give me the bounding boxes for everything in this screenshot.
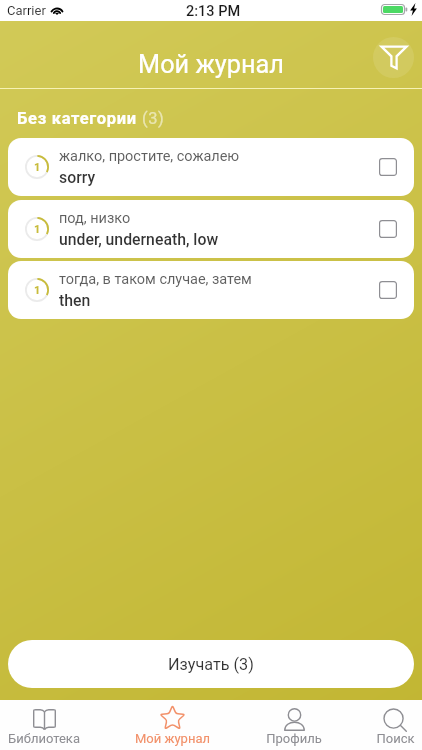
staticText: Профиль (266, 731, 322, 746)
staticText: Без категории (17, 109, 137, 128)
button[interactable]: Изучать (3) (8, 640, 414, 688)
button[interactable]: 1 (8, 138, 414, 196)
button[interactable]: 1 (8, 261, 414, 319)
staticText: (3) (142, 109, 165, 128)
button[interactable]: Select word (379, 220, 397, 238)
staticText: Мой журнал (0, 50, 422, 80)
button[interactable]: 1 (8, 200, 414, 258)
button[interactable]: Select word (379, 158, 397, 176)
staticText: Carrier (7, 3, 46, 18)
button[interactable]: Поиск (343, 700, 422, 750)
staticText: Изучать (3) (168, 655, 254, 674)
button[interactable]: Select word (379, 281, 397, 299)
staticText: Библиотека (8, 731, 80, 746)
staticText: Поиск (376, 731, 415, 746)
staticText: 2:13 PM (186, 3, 241, 20)
staticText: под, низко (59, 210, 131, 227)
staticText: Мой журнал (135, 731, 210, 746)
staticText: under, underneath, low (59, 230, 219, 249)
staticText: 1 (34, 161, 41, 174)
staticText: тогда, в таком случае, затем (59, 271, 252, 288)
button[interactable]: Профиль (242, 700, 346, 750)
staticText: sorry (59, 168, 96, 187)
button[interactable]: Filter (373, 37, 414, 78)
staticText: 1 (34, 284, 41, 297)
staticText: then (59, 291, 91, 310)
staticText: 1 (34, 223, 41, 236)
button[interactable]: Библиотека (0, 700, 96, 750)
button[interactable]: Мой журнал (120, 700, 224, 750)
staticText: жалко, простите, сожалею (59, 148, 240, 165)
